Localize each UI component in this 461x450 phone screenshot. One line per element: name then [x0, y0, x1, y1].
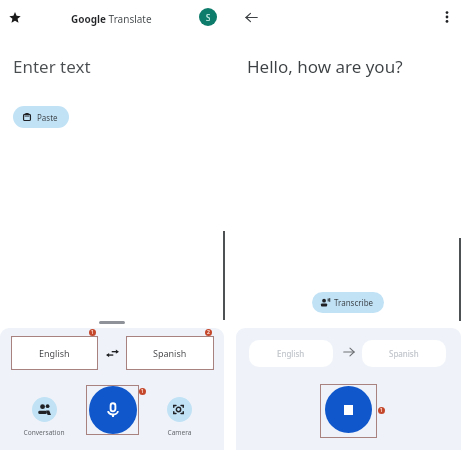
- staticText: Spanish: [153, 347, 187, 359]
- button[interactable]: Starred: [3, 6, 27, 30]
- button[interactable]: Camera: [151, 397, 207, 437]
- staticText: Paste: [37, 112, 58, 123]
- staticText: Conversation: [23, 428, 65, 437]
- staticText: 1: [91, 329, 94, 336]
- staticText: 1: [141, 388, 144, 395]
- button[interactable]: English: [249, 340, 333, 367]
- button[interactable]: Transcribe: [312, 292, 384, 313]
- button[interactable]: Spanish: [126, 336, 214, 370]
- button[interactable]: More options: [435, 5, 459, 29]
- staticText: English: [39, 347, 70, 359]
- button[interactable]: Conversation: [16, 397, 72, 437]
- button[interactable]: Stop recording: [325, 386, 372, 433]
- staticText: 2: [207, 329, 210, 336]
- button[interactable]: Paste: [13, 106, 69, 128]
- button[interactable]: Account: [196, 5, 219, 28]
- button[interactable]: English: [11, 336, 98, 370]
- staticText: Google Translate: [71, 12, 152, 26]
- staticText: Hello, how are you?: [247, 55, 403, 78]
- button[interactable]: Microphone: [89, 386, 137, 434]
- staticText: Enter text: [13, 55, 91, 78]
- staticText: S: [206, 12, 211, 23]
- staticText: Transcribe: [334, 297, 374, 308]
- staticText: Spanish: [389, 348, 419, 359]
- button[interactable]: Spanish: [362, 340, 446, 367]
- button[interactable]: Swap languages: [106, 347, 119, 360]
- button[interactable]: Back: [239, 5, 263, 29]
- staticText: 1: [380, 407, 383, 414]
- staticText: English: [277, 348, 305, 359]
- staticText: Camera: [167, 428, 192, 437]
